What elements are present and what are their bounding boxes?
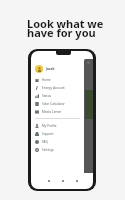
- staticText: Home: [42, 78, 51, 82]
- button[interactable]: Status: [35, 92, 82, 100]
- staticText: Jacob: [46, 67, 55, 71]
- staticText: Settings: [42, 148, 54, 152]
- button[interactable]: Media Center: [35, 108, 82, 116]
- staticText: Look what we have for you: [27, 16, 104, 40]
- button[interactable]: FAQ: [35, 138, 82, 146]
- staticText: Solar Calculator: [42, 102, 65, 106]
- staticText: Status: [42, 94, 52, 98]
- staticText: FAQ: [42, 140, 48, 144]
- staticText: Media Center: [42, 110, 62, 114]
- button[interactable]: Settings: [35, 146, 82, 154]
- button[interactable]: Support: [35, 130, 82, 138]
- staticText: My Profile: [42, 124, 57, 128]
- button[interactable]: Energy Account: [35, 84, 82, 92]
- button[interactable]: Solar Calculator: [35, 100, 82, 108]
- button[interactable]: Jacob: [35, 65, 55, 73]
- staticText: Energy Account: [42, 86, 65, 90]
- button[interactable]: My Profile: [35, 122, 82, 130]
- button[interactable]: Home: [35, 76, 82, 84]
- staticText: Support: [42, 132, 54, 136]
